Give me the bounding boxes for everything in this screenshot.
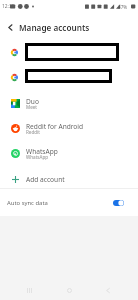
button[interactable]: Google account: [0, 40, 138, 65]
button[interactable]: Reddit for Android: [0, 116, 138, 141]
button[interactable]: Google account: [0, 65, 138, 90]
staticText: Reddit for Android: [26, 122, 84, 131]
staticText: Meet: [26, 104, 38, 110]
staticText: Reddit: [26, 129, 40, 135]
button[interactable]: Auto sync data: [0, 189, 138, 216]
button[interactable]: Back: [0, 17, 20, 37]
button[interactable]: Duo: [0, 91, 138, 116]
staticText: Auto sync data: [7, 199, 48, 207]
staticText: Duo: [26, 97, 39, 106]
staticText: WhatsApp: [26, 154, 49, 160]
button[interactable]: Add account: [0, 167, 138, 192]
staticText: Manage accounts: [19, 22, 90, 33]
staticText: Add account: [26, 175, 65, 184]
staticText: 37%: [118, 4, 128, 10]
button[interactable]: WhatsApp: [0, 141, 138, 166]
staticText: 12:35: [2, 3, 15, 10]
staticText: WhatsApp: [26, 147, 58, 156]
